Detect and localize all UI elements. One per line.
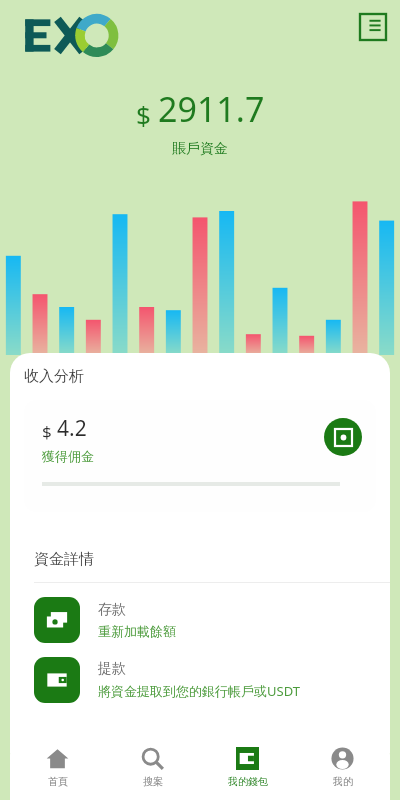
staticText: 將資金提取到您的銀行帳戶或USDT [98, 682, 300, 700]
button[interactable]: 搜案 [105, 735, 200, 800]
staticText: 提款 [98, 660, 126, 678]
staticText: 獲得佣金 [42, 448, 94, 464]
button[interactable]: 我的 [295, 735, 390, 800]
staticText: 2911.7 [158, 86, 265, 132]
staticText: 我的 [333, 775, 353, 788]
staticText: 4.2 [57, 414, 87, 443]
staticText: 收入分析 [24, 367, 84, 386]
staticText: 搜案 [143, 775, 163, 788]
staticText: $ [42, 420, 57, 443]
button[interactable]: 我的錢包 [200, 735, 295, 800]
button[interactable]: Records [360, 14, 386, 40]
staticText: 存款 [98, 601, 126, 619]
button[interactable]: $ [24, 400, 376, 512]
staticText: 賬戶資金 [172, 140, 228, 158]
staticText: 我的錢包 [228, 775, 268, 788]
button[interactable]: 存款 [34, 597, 366, 643]
staticText: 重新加載餘額 [98, 623, 176, 639]
staticText: 首頁 [48, 775, 68, 788]
staticText: 資金詳情 [34, 550, 94, 569]
staticText: $ [136, 97, 158, 132]
button[interactable]: 首頁 [10, 735, 105, 800]
button[interactable]: 提款 [34, 657, 366, 703]
